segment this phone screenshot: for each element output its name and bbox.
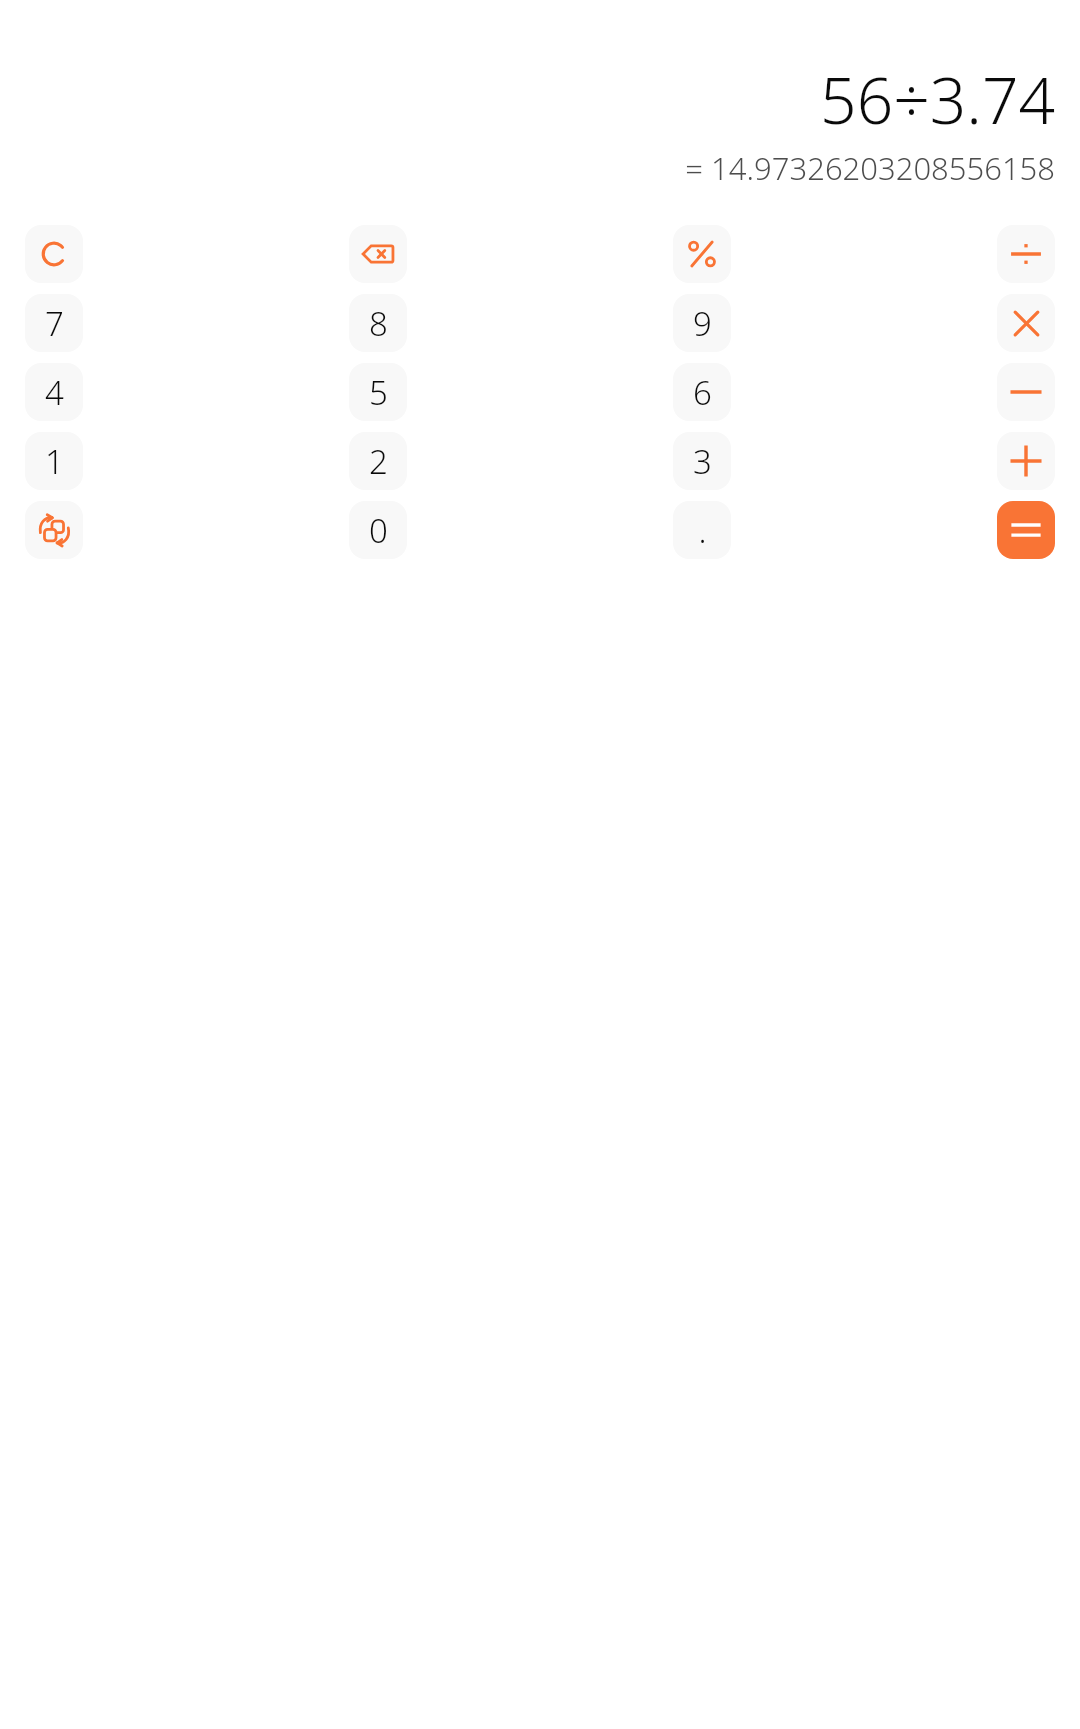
staticText: 4 [45, 370, 64, 415]
button[interactable]: 4 [25, 363, 83, 421]
button[interactable]: Divide [997, 225, 1055, 283]
staticText: = 14.97326203208556158 [685, 147, 1055, 189]
staticText: 6 [693, 370, 712, 415]
staticText: 1 [45, 439, 64, 484]
button[interactable]: 6 [673, 363, 731, 421]
button[interactable]: 2 [349, 432, 407, 490]
button[interactable]: Percent [673, 225, 731, 283]
staticText: 5 [369, 370, 388, 415]
button[interactable]: Clear [25, 225, 83, 283]
staticText: 0 [369, 508, 388, 553]
button[interactable]: Unit converter [25, 501, 83, 559]
staticText: 56÷3.74 [820, 56, 1055, 143]
button[interactable]: Multiply [997, 294, 1055, 352]
staticText: . [698, 508, 707, 553]
button[interactable]: Backspace [349, 225, 407, 283]
button[interactable]: Plus [997, 432, 1055, 490]
button[interactable]: Minus [997, 363, 1055, 421]
staticText: 7 [45, 301, 64, 346]
staticText: 2 [369, 439, 388, 484]
staticText: 3 [693, 439, 712, 484]
button[interactable]: 9 [673, 294, 731, 352]
button[interactable]: 5 [349, 363, 407, 421]
staticText: 9 [693, 301, 712, 346]
button[interactable]: 0 [349, 501, 407, 559]
staticText: 8 [369, 301, 388, 346]
button[interactable]: 3 [673, 432, 731, 490]
button[interactable]: . [673, 501, 731, 559]
button[interactable]: Equals [997, 501, 1055, 559]
button[interactable]: 8 [349, 294, 407, 352]
button[interactable]: 1 [25, 432, 83, 490]
button[interactable]: 7 [25, 294, 83, 352]
